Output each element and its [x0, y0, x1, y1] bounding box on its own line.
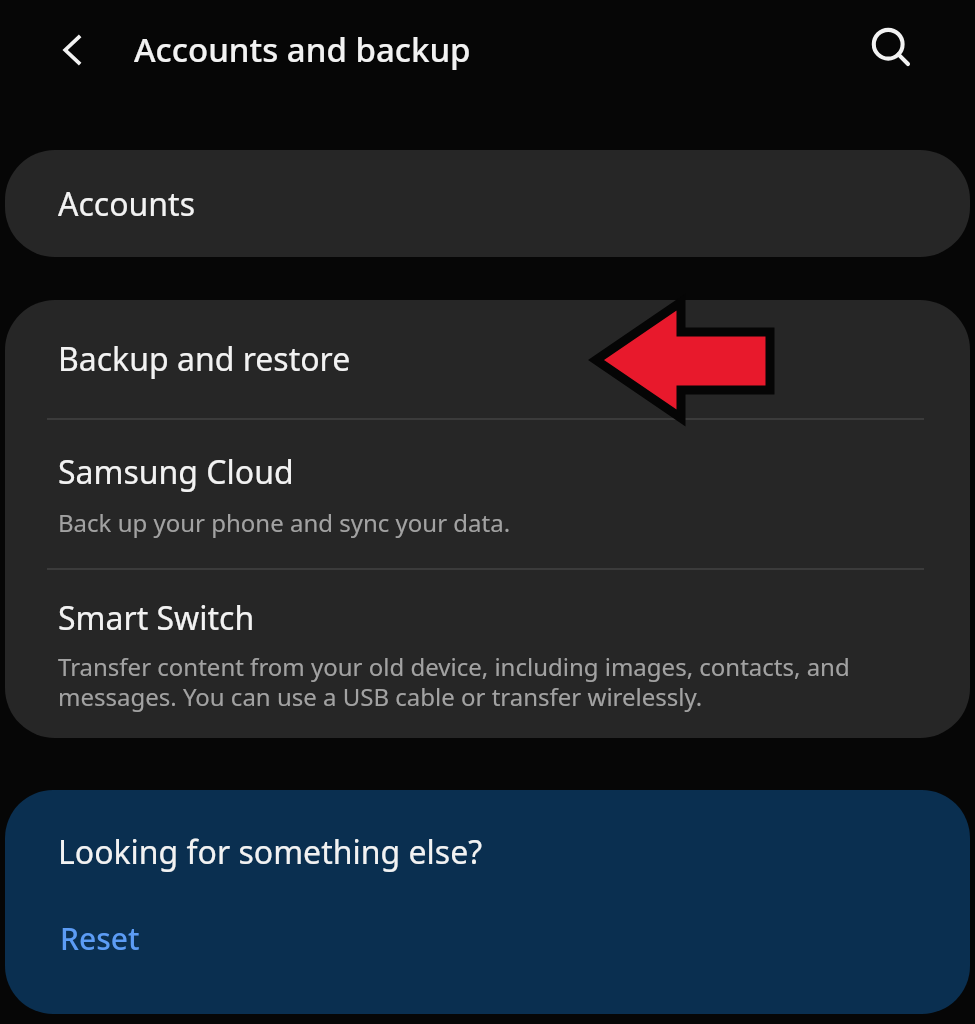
button[interactable]: Search: [855, 12, 931, 88]
button[interactable]: Accounts: [5, 150, 970, 257]
staticText: Back up your phone and sync your data.: [58, 506, 511, 539]
staticText: Transfer content from your old device, i…: [58, 650, 936, 713]
staticText: Looking for something else?: [58, 830, 483, 874]
button[interactable]: Backup and restore: [5, 300, 970, 418]
button[interactable]: Samsung Cloud: [5, 420, 970, 568]
staticText: Backup and restore: [58, 337, 351, 381]
staticText: Smart Switch: [58, 596, 255, 640]
button[interactable]: Back: [36, 12, 112, 88]
staticText: Accounts and backup: [134, 27, 471, 72]
staticText: Reset: [60, 918, 140, 959]
button[interactable]: Reset: [58, 914, 142, 963]
button[interactable]: Smart Switch: [5, 570, 970, 738]
staticText: Accounts: [58, 182, 195, 226]
staticText: Samsung Cloud: [58, 450, 294, 494]
